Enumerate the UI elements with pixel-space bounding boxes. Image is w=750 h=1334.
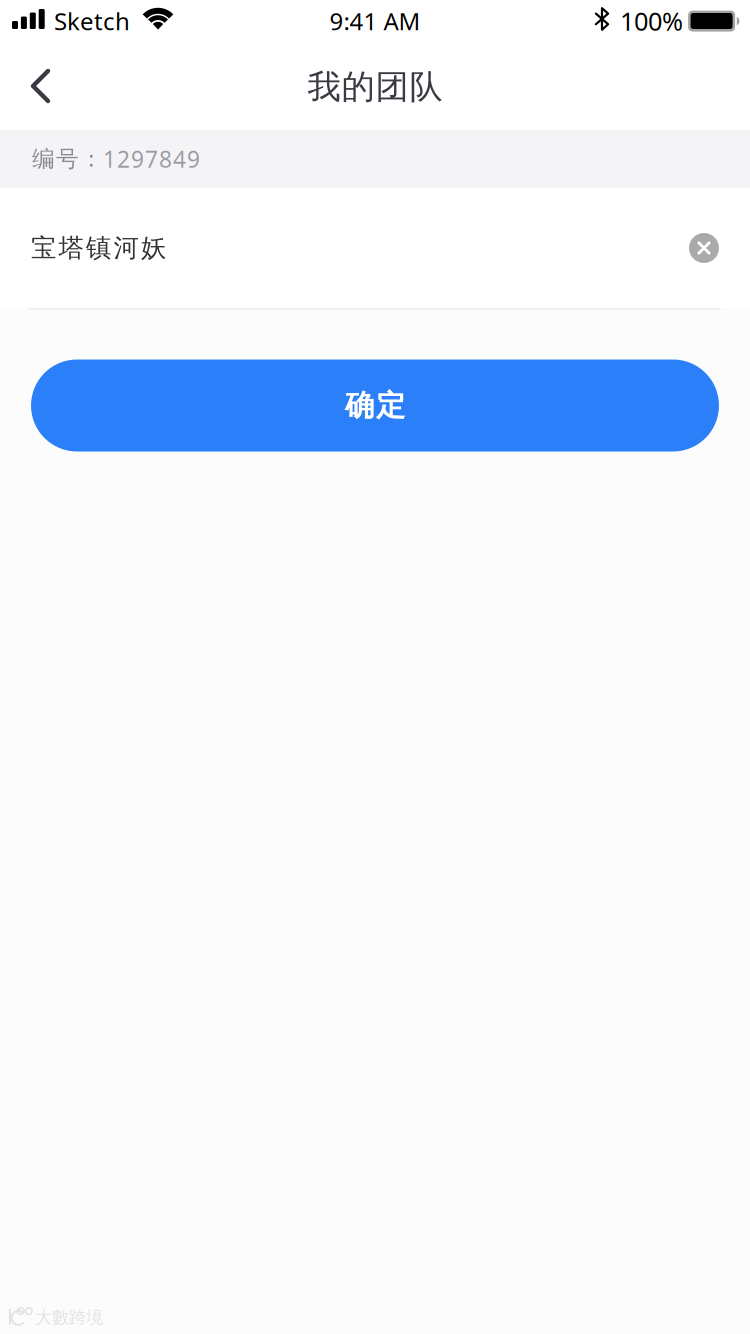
staticText: 我的团队 [307, 66, 442, 107]
button[interactable]: Clear text [679, 223, 729, 273]
staticText: Sketch [54, 5, 130, 37]
staticText: 确定 [345, 387, 405, 423]
staticText: 100% [620, 4, 683, 38]
staticText: 编号： [32, 145, 103, 173]
staticText: 大數跨境 [35, 1307, 103, 1328]
staticText: 9:41 AM [329, 5, 420, 37]
staticText: 宝塔镇河妖 [31, 232, 166, 263]
button[interactable]: 确定 [31, 359, 719, 451]
button[interactable]: Back [14, 58, 60, 116]
staticText: 1297849 [103, 144, 200, 174]
